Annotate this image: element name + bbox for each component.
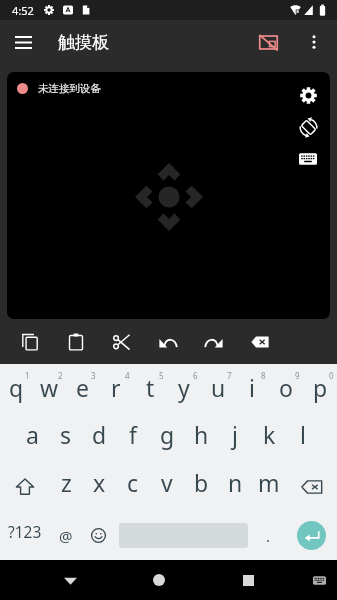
button[interactable]: Cast screen disabled <box>248 21 288 61</box>
button[interactable]: Cut <box>99 319 145 364</box>
button[interactable]: Delete <box>286 462 337 511</box>
button[interactable]: c <box>116 462 150 511</box>
button[interactable]: 5 <box>133 364 167 413</box>
button[interactable]: Touchpad area <box>7 72 330 319</box>
staticText: e <box>76 372 89 403</box>
staticText: . <box>266 526 271 546</box>
button[interactable]: Redo <box>191 319 237 364</box>
staticText: 5 <box>159 370 164 381</box>
staticText: d <box>92 419 107 450</box>
button[interactable]: Emoji <box>82 511 115 560</box>
button[interactable]: h <box>184 413 218 462</box>
button[interactable]: 8 <box>235 364 269 413</box>
staticText: c <box>127 467 139 498</box>
button[interactable]: Rotate screen <box>292 111 324 143</box>
button[interactable]: n <box>218 462 252 511</box>
staticText: 9 <box>295 370 300 381</box>
staticText: r <box>111 372 121 403</box>
staticText: h <box>194 419 209 450</box>
staticText: 6 <box>193 370 198 381</box>
button[interactable]: b <box>184 462 218 511</box>
button[interactable]: . <box>252 511 285 560</box>
button[interactable]: Backspace <box>237 319 283 364</box>
button[interactable]: More options <box>294 21 334 61</box>
staticText: i <box>249 372 255 403</box>
staticText: 4 <box>125 370 130 381</box>
staticText: 3 <box>91 370 96 381</box>
staticText: 7 <box>227 370 232 381</box>
staticText: 未连接到设备 <box>38 82 101 95</box>
staticText: g <box>160 419 175 450</box>
button[interactable]: Paste <box>53 319 99 364</box>
button[interactable]: ?123 <box>0 511 49 560</box>
button[interactable]: Copy <box>7 319 53 364</box>
button[interactable]: Recent apps <box>228 560 268 600</box>
button[interactable]: a <box>16 413 49 462</box>
button[interactable]: 7 <box>201 364 235 413</box>
staticText: a <box>26 419 39 450</box>
button[interactable]: Back <box>50 560 90 600</box>
staticText: v <box>161 467 173 498</box>
staticText: 4:52 <box>12 3 34 18</box>
button[interactable]: f <box>116 413 150 462</box>
staticText: b <box>194 467 209 498</box>
staticText: m <box>258 467 280 498</box>
button[interactable]: 3 <box>66 364 99 413</box>
staticText: n <box>228 467 243 498</box>
button[interactable]: k <box>252 413 286 462</box>
staticText: j <box>232 419 238 450</box>
button[interactable]: Settings <box>292 79 324 111</box>
button[interactable]: 4 <box>99 364 133 413</box>
staticText: f <box>129 419 137 450</box>
staticText: q <box>9 372 24 403</box>
button[interactable]: 9 <box>269 364 303 413</box>
staticText: u <box>211 372 226 403</box>
button[interactable]: l <box>286 413 320 462</box>
button[interactable]: s <box>49 413 82 462</box>
button[interactable]: x <box>83 462 116 511</box>
staticText: x <box>93 467 106 498</box>
button[interactable]: Home <box>139 560 179 600</box>
button[interactable]: m <box>252 462 286 511</box>
button[interactable]: @ <box>49 511 82 560</box>
button[interactable]: z <box>50 462 83 511</box>
button[interactable]: Show keyboard <box>292 143 324 175</box>
staticText: l <box>300 419 306 450</box>
staticText: p <box>313 372 328 403</box>
staticText: 2 <box>58 370 63 381</box>
button[interactable]: 0 <box>303 364 337 413</box>
button[interactable]: Switch keyboard <box>303 564 335 596</box>
staticText: 0 <box>329 370 334 381</box>
staticText: s <box>60 419 72 450</box>
staticText: t <box>146 372 155 403</box>
button[interactable]: Shift <box>0 462 50 511</box>
staticText: 触摸板 <box>58 32 109 53</box>
button[interactable]: 6 <box>167 364 201 413</box>
staticText: z <box>61 467 72 498</box>
button[interactable]: g <box>150 413 184 462</box>
staticText: 1 <box>25 370 30 381</box>
button[interactable]: 1 <box>0 364 33 413</box>
staticText: o <box>279 372 293 403</box>
staticText: k <box>263 419 276 450</box>
button[interactable]: Undo <box>145 319 191 364</box>
staticText: @ <box>59 526 73 546</box>
button[interactable]: v <box>150 462 184 511</box>
button[interactable]: j <box>218 413 252 462</box>
staticText: 8 <box>261 370 266 381</box>
staticText: y <box>178 372 190 403</box>
button[interactable]: d <box>82 413 116 462</box>
staticText: w <box>40 372 59 403</box>
button[interactable]: Navigation menu <box>0 20 42 62</box>
button[interactable]: 2 <box>33 364 66 413</box>
staticText: ?123 <box>8 521 42 542</box>
button[interactable]: Enter <box>297 521 326 550</box>
